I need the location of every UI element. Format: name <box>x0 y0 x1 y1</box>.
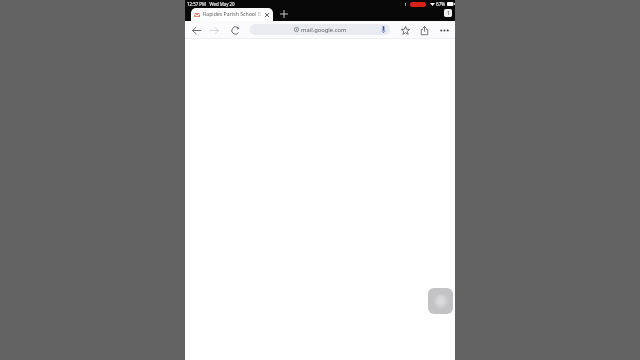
staticText: 1 <box>447 10 450 17</box>
button[interactable]: Compose <box>428 288 453 314</box>
button[interactable]: Voice search <box>378 24 389 35</box>
button[interactable]: Bookmark <box>398 23 412 37</box>
staticText: Rapides Parish School B <box>203 10 262 17</box>
button[interactable]: New tab <box>278 8 290 20</box>
button[interactable]: Back <box>189 23 203 37</box>
staticText: 67% <box>436 1 446 7</box>
button[interactable]: Switch tabs <box>444 9 452 17</box>
button[interactable]: Forward <box>207 23 221 37</box>
button[interactable]: mail.google.com <box>250 24 390 35</box>
button[interactable]: More options <box>437 23 451 37</box>
button[interactable]: Reload <box>228 23 242 37</box>
button[interactable]: Share <box>417 23 431 37</box>
staticText: 12:57 PM Wed May 20 <box>187 1 235 7</box>
staticText: mail.google.com <box>301 26 347 34</box>
button[interactable]: Rapides Parish School B <box>191 8 273 21</box>
button[interactable]: Close tab <box>263 11 270 18</box>
